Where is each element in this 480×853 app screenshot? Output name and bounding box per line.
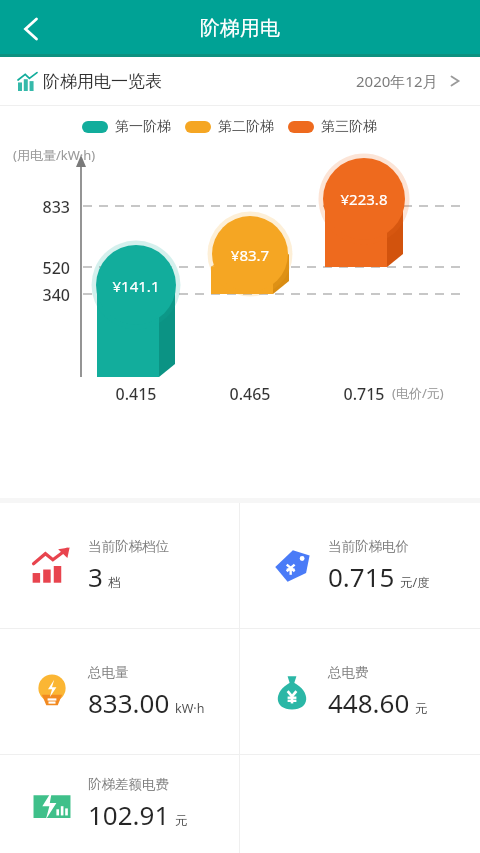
staticText: 448.60 bbox=[328, 685, 410, 720]
staticText: ¥141.1 bbox=[76, 276, 196, 296]
staticText: 总电量 bbox=[88, 664, 129, 681]
staticText: 总电费 bbox=[328, 664, 369, 681]
staticText: 阶梯用电一览表 bbox=[43, 71, 162, 92]
staticText: kW·h bbox=[175, 700, 205, 717]
staticText: 阶梯差额电费 bbox=[88, 776, 169, 793]
staticText: 元/度 bbox=[400, 574, 430, 591]
button[interactable]: 阶梯用电一览表 bbox=[0, 57, 480, 105]
staticText: 0.415 bbox=[76, 383, 196, 405]
button[interactable]: 当前阶梯档位 bbox=[0, 503, 239, 628]
staticText: 340 bbox=[0, 284, 70, 306]
staticText: 0.715 bbox=[304, 383, 424, 405]
staticText: (用电量/kW·h) bbox=[13, 146, 96, 164]
staticText: 第三阶梯 bbox=[321, 118, 377, 136]
staticText: 102.91 bbox=[88, 797, 170, 832]
button[interactable]: 当前阶梯电价 bbox=[240, 503, 480, 628]
staticText: 0.715 bbox=[328, 559, 395, 594]
staticText: 833.00 bbox=[88, 685, 170, 720]
staticText: ¥83.7 bbox=[190, 245, 310, 265]
staticText: 0.465 bbox=[190, 383, 310, 405]
staticText: 阶梯用电 bbox=[200, 16, 280, 41]
staticText: 3 bbox=[88, 559, 103, 594]
staticText: 当前阶梯档位 bbox=[88, 538, 169, 555]
staticText: 元 bbox=[175, 813, 188, 829]
button[interactable]: 阶梯差额电费 bbox=[0, 755, 239, 853]
staticText: 833 bbox=[0, 196, 70, 218]
staticText: 第一阶梯 bbox=[115, 118, 171, 136]
staticText: 元 bbox=[415, 701, 428, 717]
staticText: 当前阶梯电价 bbox=[328, 538, 409, 555]
staticText: 第二阶梯 bbox=[218, 118, 274, 136]
staticText: 2020年12月 bbox=[356, 71, 438, 91]
staticText: (电价/元) bbox=[392, 384, 444, 402]
staticText: 520 bbox=[0, 257, 70, 279]
button[interactable]: Back bbox=[8, 6, 54, 52]
staticText: ¥223.8 bbox=[304, 189, 424, 209]
button[interactable]: 总电量 bbox=[0, 629, 239, 754]
button[interactable]: 总电费 bbox=[240, 629, 480, 754]
staticText: 档 bbox=[108, 575, 121, 591]
